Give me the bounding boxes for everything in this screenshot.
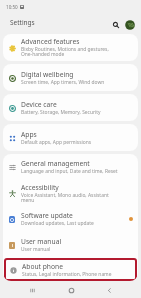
- button[interactable]: Accessibility: [3, 180, 138, 206]
- button[interactable]: Device care: [3, 94, 138, 121]
- button[interactable]: User manual: [3, 232, 138, 258]
- button[interactable]: General management: [3, 154, 138, 180]
- button[interactable]: Recents: [25, 283, 39, 297]
- staticText: Language and input, Date and time, Reset: [21, 168, 118, 175]
- staticText: General management: [21, 159, 90, 168]
- staticText: Bixby Routines, Motions and gestures, On…: [21, 46, 119, 58]
- button[interactable]: Advanced features: [3, 34, 138, 61]
- staticText: Screen time, App timers, Wind down: [21, 79, 105, 86]
- staticText: Settings: [10, 18, 35, 27]
- button[interactable]: Apps: [3, 124, 138, 151]
- staticText: User manual: [21, 237, 62, 246]
- button[interactable]: Account: [123, 18, 136, 31]
- staticText: User manual: [21, 246, 51, 253]
- button[interactable]: Software update: [3, 206, 138, 232]
- staticText: Accessibility: [21, 183, 59, 192]
- staticText: 10:50: [6, 4, 18, 10]
- staticText: Device care: [21, 100, 57, 109]
- staticText: Download updates, Last update: [21, 220, 94, 227]
- staticText: About phone: [22, 262, 63, 271]
- staticText: Digital wellbeing: [21, 70, 74, 79]
- staticText: Battery, Storage, Memory, Security: [21, 109, 101, 116]
- staticText: Apps: [21, 130, 37, 139]
- button[interactable]: Search: [109, 18, 122, 31]
- staticText: Status, Legal information, Phone name: [22, 271, 112, 278]
- staticText: Default apps, App permissions: [21, 139, 92, 146]
- button[interactable]: Back: [102, 283, 116, 297]
- button[interactable]: About phone: [4, 258, 137, 281]
- button[interactable]: Digital wellbeing: [3, 64, 138, 91]
- staticText: Advanced features: [21, 37, 80, 46]
- button[interactable]: Home: [64, 283, 78, 297]
- staticText: Voice Assistant, Mono audio, Assistant m…: [21, 192, 119, 204]
- staticText: Software update: [21, 211, 73, 220]
